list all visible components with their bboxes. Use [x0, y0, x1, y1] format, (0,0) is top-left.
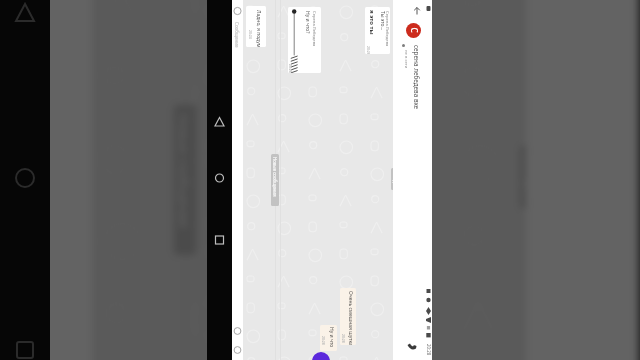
button[interactable]: Серена Лебедева	[288, 7, 321, 73]
staticText: Новые сообщения	[272, 157, 278, 197]
button[interactable]: Ну и что	[320, 325, 337, 351]
staticText: С	[408, 27, 419, 33]
button[interactable]: Back	[14, 2, 36, 24]
button[interactable]: Ладно, я подумаю	[246, 6, 266, 47]
staticText: 20:26	[288, 64, 293, 73]
staticText: 20:24	[248, 30, 253, 39]
button[interactable]: Back	[410, 4, 424, 18]
staticText: сегодня	[392, 171, 398, 188]
staticText: Ладно, я подумаю	[255, 10, 262, 47]
button[interactable]: Очень смешная шутка	[340, 288, 356, 345]
staticText: Очень смешная шутка	[347, 291, 354, 345]
staticText: не в сети	[402, 50, 408, 69]
staticText: 20:28	[426, 344, 432, 356]
button[interactable]: Сообщение	[232, 0, 243, 360]
staticText: Серена Лебедева	[383, 11, 389, 47]
staticText: Ты это...	[379, 11, 386, 31]
staticText: сегодня	[522, 154, 539, 203]
staticText: Серена Лебедева	[310, 11, 316, 47]
button[interactable]: Home	[14, 167, 36, 189]
staticText: 20:28	[321, 336, 326, 345]
button[interactable]: Новые сообщения	[271, 154, 279, 206]
staticText: Ну и что	[328, 327, 335, 348]
staticText: 20:28	[341, 334, 346, 343]
button[interactable]: Call	[404, 339, 420, 355]
button[interactable]: Record voice message	[312, 352, 330, 360]
button[interactable]: Chat avatar	[406, 23, 421, 38]
staticText: Ну и что?	[304, 11, 311, 34]
staticText: 20:26	[366, 46, 371, 54]
button[interactable]: Recent apps	[14, 339, 36, 360]
staticText: серена лебедева вхе	[412, 45, 421, 110]
staticText: я это ты	[368, 10, 376, 35]
button[interactable]: Серена Лебедева	[365, 7, 390, 54]
staticText: Сообщение	[234, 22, 240, 48]
